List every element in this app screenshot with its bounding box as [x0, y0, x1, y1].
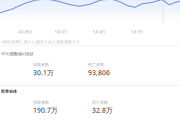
staticText: 死亡者数 [92, 100, 108, 105]
staticText: 5月1日 [55, 29, 67, 34]
staticText: 30.1万 [33, 68, 54, 77]
staticText: 回復者数 [33, 62, 49, 67]
staticText: 32.8万 [92, 106, 113, 115]
staticText: 5月4日 [93, 29, 105, 34]
staticText: 世界全体 [1, 89, 17, 94]
staticText: 5月7日 [131, 29, 143, 34]
staticText: 回復者数 [33, 100, 49, 105]
staticText: 190.7万 [33, 106, 58, 115]
staticText: 4月28日 [18, 29, 32, 34]
staticText: ※前日以降に新たに報告された感染者数です [1, 39, 80, 44]
staticText: 死亡者数 [88, 62, 104, 67]
staticText: 93,806 [88, 68, 110, 77]
staticText: ※1カ国数値の合計 [1, 51, 34, 56]
